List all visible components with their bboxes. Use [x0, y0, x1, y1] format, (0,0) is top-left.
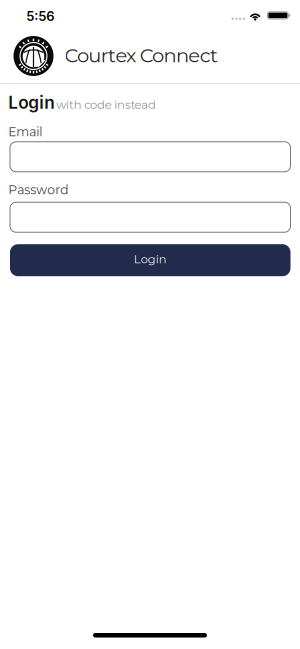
staticText: 5:56: [26, 8, 54, 24]
button[interactable]: [10, 202, 290, 232]
staticText: Login: [8, 92, 55, 113]
button[interactable]: [10, 142, 290, 172]
button[interactable]: with code instead: [56, 97, 156, 111]
button[interactable]: Login: [10, 244, 290, 276]
staticText: Email: [8, 124, 42, 139]
staticText: Password: [8, 182, 68, 197]
staticText: with code instead: [56, 97, 156, 111]
staticText: Courtex Connect: [64, 43, 218, 67]
staticText: Login: [134, 252, 167, 266]
